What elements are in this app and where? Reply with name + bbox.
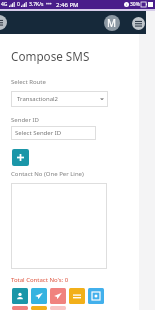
staticText: Compose SMS — [11, 48, 90, 64]
button[interactable]: Templates — [69, 288, 85, 304]
staticText: Select Sender ID — [15, 129, 62, 137]
staticText: ••• — [46, 1, 52, 8]
staticText: 4G — [1, 1, 8, 8]
button[interactable]: Clear — [12, 306, 28, 310]
button[interactable]: Navigation menu — [0, 15, 7, 30]
button[interactable]: Send message — [31, 288, 47, 304]
button[interactable]: More options — [132, 17, 145, 30]
staticText: Sender ID — [11, 116, 39, 124]
button[interactable]: Schedule — [88, 288, 104, 304]
staticText: Select Route — [11, 78, 46, 86]
staticText: 0 — [17, 1, 20, 8]
staticText: i — [126, 2, 128, 7]
staticText: Transactional2 — [17, 95, 58, 103]
staticText: 30% — [130, 1, 140, 8]
button[interactable]: Delete — [50, 306, 66, 310]
button[interactable]: Draft — [31, 306, 47, 310]
staticText: 2:46 PM — [56, 1, 79, 9]
button[interactable]: Contacts — [12, 288, 28, 304]
staticText: M — [107, 16, 117, 30]
button[interactable]: Select Sender ID — [11, 126, 96, 140]
staticText: Total Contact No's: 0 — [11, 276, 69, 284]
button[interactable]: Add sender — [12, 149, 29, 166]
button[interactable]: Send now — [50, 288, 66, 304]
staticText: 3.7K/s — [29, 1, 44, 8]
button[interactable]: Transactional2 — [11, 91, 108, 107]
button[interactable]: Contact numbers input — [11, 183, 107, 269]
staticText: Contact No (One Per Line) — [11, 170, 84, 178]
button[interactable]: Profile — [104, 15, 120, 31]
